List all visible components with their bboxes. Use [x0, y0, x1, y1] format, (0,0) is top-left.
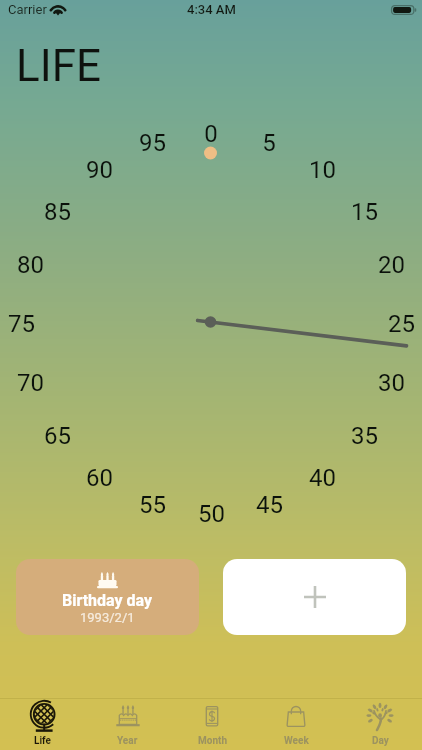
staticText: 55 [139, 491, 166, 519]
staticText: 10 [309, 156, 336, 184]
staticText: 45 [256, 491, 283, 519]
staticText: 35 [351, 422, 378, 450]
staticText: 60 [86, 464, 113, 492]
button[interactable]: Week [254, 699, 338, 750]
button[interactable]: Add [223, 559, 406, 635]
staticText: 85 [44, 198, 71, 226]
staticText: 75 [8, 310, 35, 338]
button[interactable]: Year [85, 699, 170, 750]
staticText: 40 [309, 464, 336, 492]
staticText: 80 [17, 251, 44, 279]
staticText: 1993/2/1 [80, 610, 135, 625]
staticText: 25 [388, 310, 415, 338]
button[interactable]: Birthday day [16, 559, 199, 635]
staticText: 0 [204, 120, 218, 148]
staticText: Month [198, 735, 227, 747]
staticText: 15 [351, 198, 378, 226]
staticText: 70 [17, 369, 44, 397]
staticText: Life [34, 735, 51, 747]
staticText: LIFE [16, 40, 101, 92]
staticText: 30 [378, 369, 405, 397]
staticText: 50 [198, 500, 225, 528]
staticText: 90 [86, 156, 113, 184]
staticText: Year [117, 735, 138, 747]
button[interactable]: Life [0, 699, 85, 750]
button[interactable]: Day [338, 699, 422, 750]
staticText: 65 [44, 422, 71, 450]
staticText: Day [372, 735, 389, 747]
staticText: Carrier [8, 2, 47, 17]
staticText: Week [284, 735, 309, 747]
staticText: 95 [139, 129, 166, 157]
staticText: 20 [378, 251, 405, 279]
staticText: 4:34 AM [187, 2, 236, 17]
staticText: Birthday day [62, 591, 153, 610]
button[interactable]: Month [170, 699, 254, 750]
staticText: 5 [262, 129, 276, 157]
